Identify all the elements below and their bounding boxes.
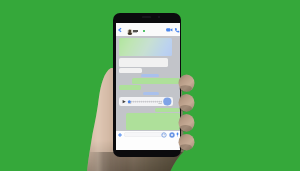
button[interactable]: Add attachment [117,131,123,138]
button[interactable] [124,132,165,137]
button[interactable]: Voice message [175,132,180,137]
button[interactable]: Voice call [174,27,180,33]
button[interactable]: Camera [169,132,175,138]
button[interactable]: Emoji [161,132,167,138]
button[interactable]: Video call [166,27,173,33]
button[interactable]: Play voice message [119,97,173,106]
button[interactable]: Back [117,27,123,33]
